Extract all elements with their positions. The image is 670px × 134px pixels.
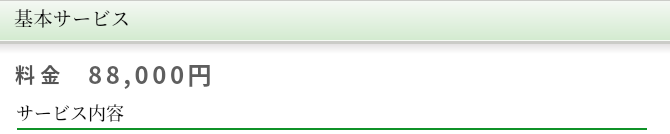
staticText: サービス内容 [16,99,124,125]
button[interactable]: 料金 [0,54,670,90]
button[interactable]: 基本サービス [0,0,670,40]
staticText: 基本サービス [14,4,131,31]
staticText: 料金 [15,60,66,89]
staticText: 88,000円 [88,56,216,91]
